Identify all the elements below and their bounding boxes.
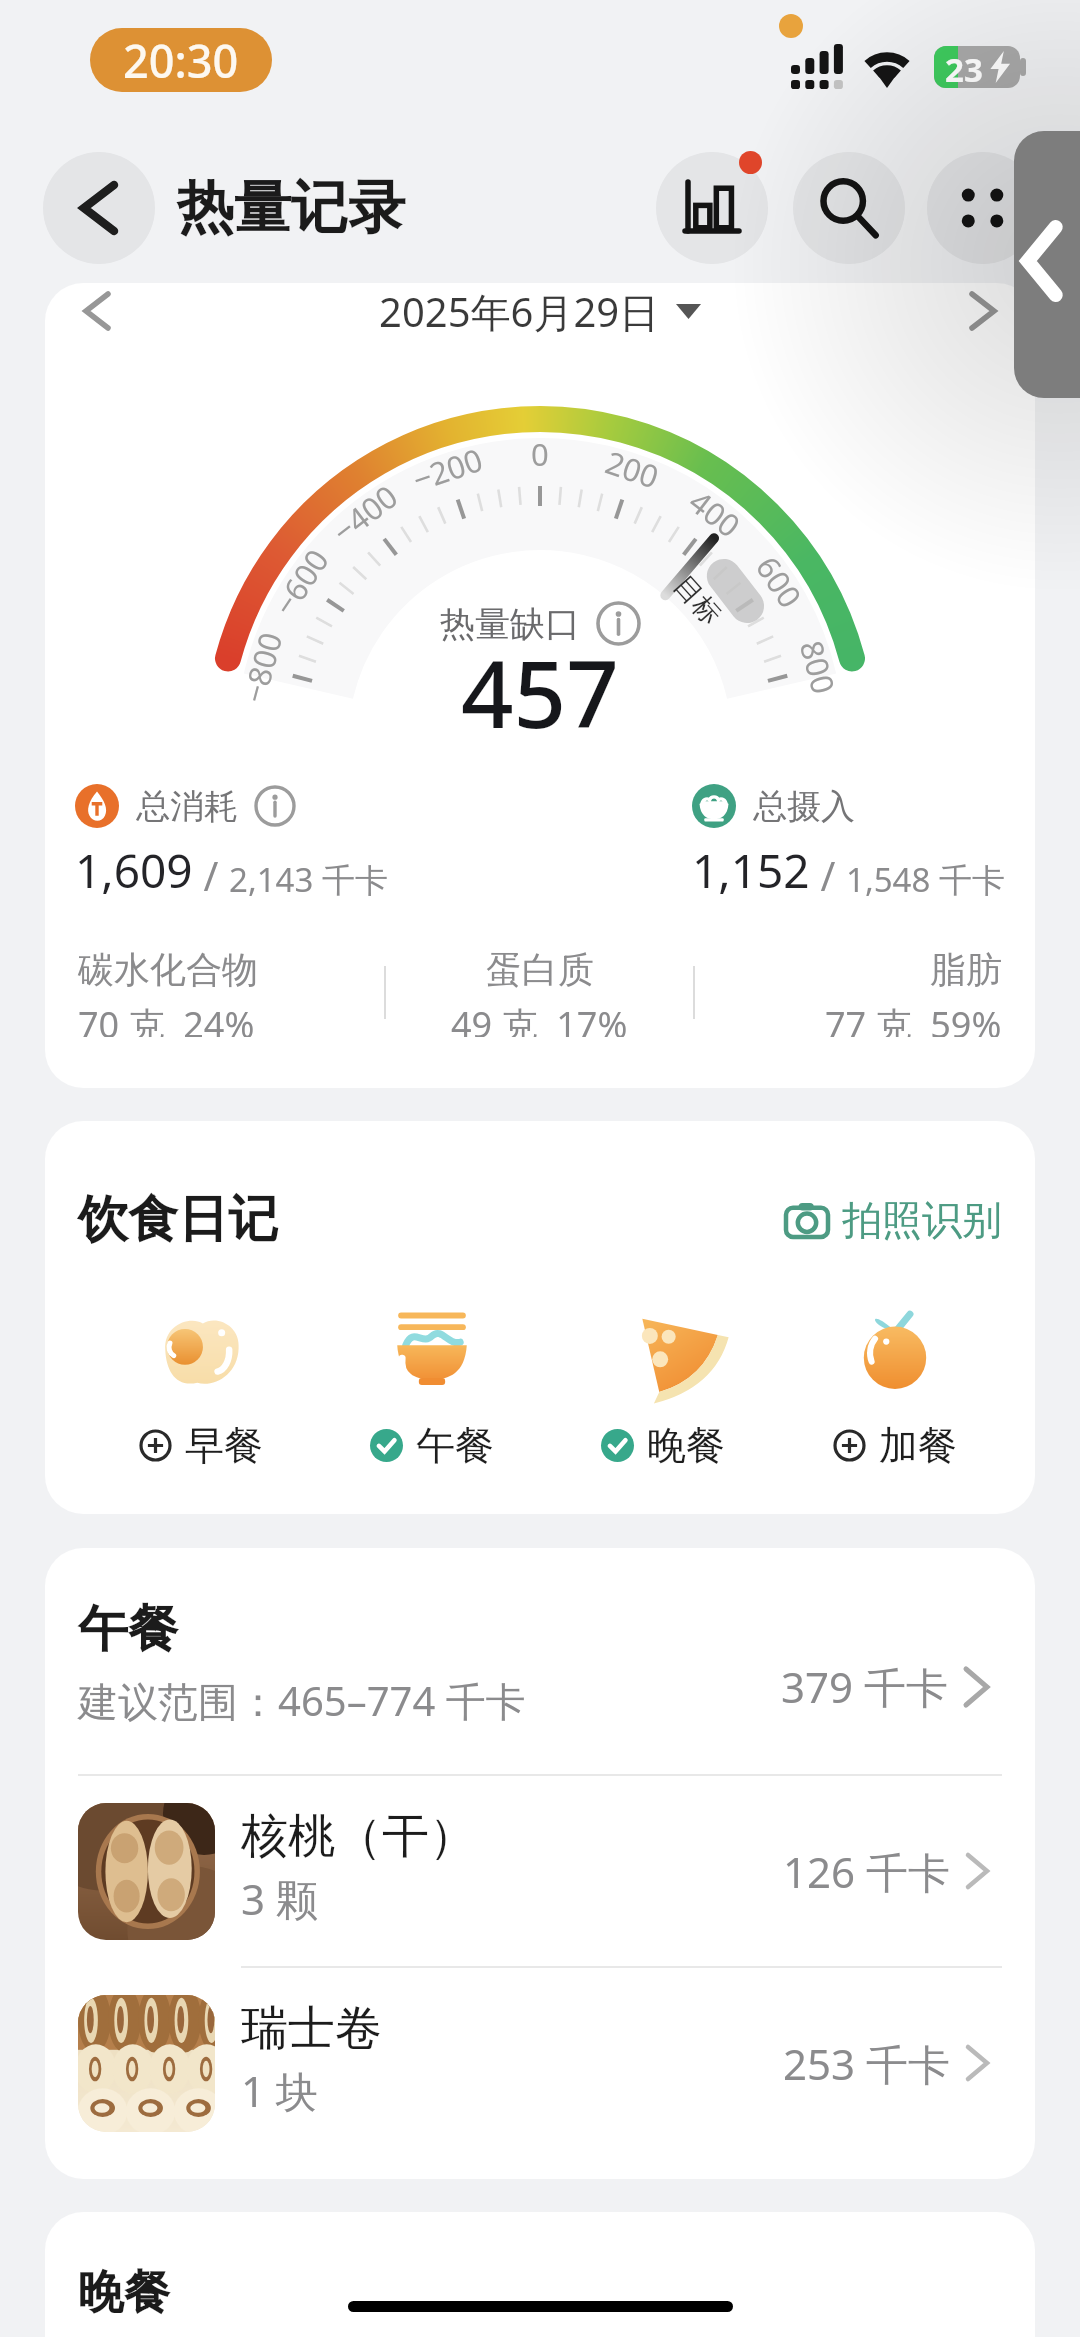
button[interactable]: More options <box>927 152 1039 264</box>
staticText: 1,609 <box>75 839 193 902</box>
staticText: 总消耗 <box>136 785 238 828</box>
staticText: 20:30 <box>123 30 239 91</box>
button[interactable]: 午餐 <box>78 1598 990 1728</box>
button[interactable]: 午餐 <box>316 1311 547 1470</box>
staticText: 晚餐 <box>78 2264 170 2322</box>
staticText: 建议范围：465–774 千卡 <box>78 1673 526 1728</box>
staticText: 晚餐 <box>647 1421 725 1470</box>
staticText: 70 克 24% <box>78 1000 255 1037</box>
staticText: / <box>810 848 846 902</box>
staticText: 热量缺口 <box>440 602 580 646</box>
button[interactable]: Statistics <box>656 152 768 264</box>
button[interactable]: Search <box>793 152 905 264</box>
staticText: 蛋白质 <box>486 947 594 992</box>
button[interactable]: 晚餐 <box>547 1311 779 1470</box>
staticText: / <box>193 848 229 902</box>
staticText: 午餐 <box>416 1421 494 1470</box>
staticText: 126 千卡 <box>783 1843 950 1900</box>
button[interactable]: 2025年6月29日 <box>125 284 955 339</box>
staticText: 1,152 <box>692 839 810 902</box>
staticText: 拍照识别 <box>842 1195 1002 1245</box>
staticText: 饮食日记 <box>78 1188 278 1251</box>
staticText: 379 千卡 <box>781 1658 948 1715</box>
staticText: 253 千卡 <box>783 2035 950 2092</box>
staticText: 77 克 59% <box>825 1000 1002 1037</box>
staticText: 1 块 <box>241 2062 318 2119</box>
staticText: 23 <box>945 47 983 92</box>
staticText: 3 颗 <box>241 1870 318 1927</box>
staticText: 早餐 <box>185 1421 263 1470</box>
button[interactable]: 拍照识别 <box>786 1195 1002 1245</box>
staticText: 49 克 17% <box>451 1000 628 1037</box>
button[interactable]: 瑞士卷 <box>78 1968 990 2158</box>
staticText: 碳水化合物 <box>78 947 258 992</box>
staticText: 加餐 <box>879 1421 957 1470</box>
button[interactable]: Next day <box>955 283 1011 339</box>
staticText: 脂肪 <box>930 947 1002 992</box>
staticText: 瑞士卷 <box>241 1999 382 2058</box>
staticText: 核桃（干） <box>241 1807 476 1866</box>
staticText: 457 <box>461 630 619 755</box>
staticText: 总摄入 <box>753 785 855 828</box>
button[interactable]: Previous day <box>69 283 125 339</box>
staticText: 1,548 千卡 <box>846 857 1005 902</box>
button[interactable]: 核桃（干） <box>78 1776 990 1966</box>
button[interactable]: Open drawer <box>1014 131 1080 398</box>
staticText: 2,143 千卡 <box>229 857 388 902</box>
staticText: 2025年6月29日 <box>379 284 660 339</box>
button[interactable]: 早餐 <box>85 1311 316 1470</box>
staticText: 午餐 <box>78 1598 178 1661</box>
button[interactable]: Back <box>43 152 155 264</box>
staticText: 热量记录 <box>177 172 405 244</box>
button[interactable]: 加餐 <box>779 1311 1011 1470</box>
